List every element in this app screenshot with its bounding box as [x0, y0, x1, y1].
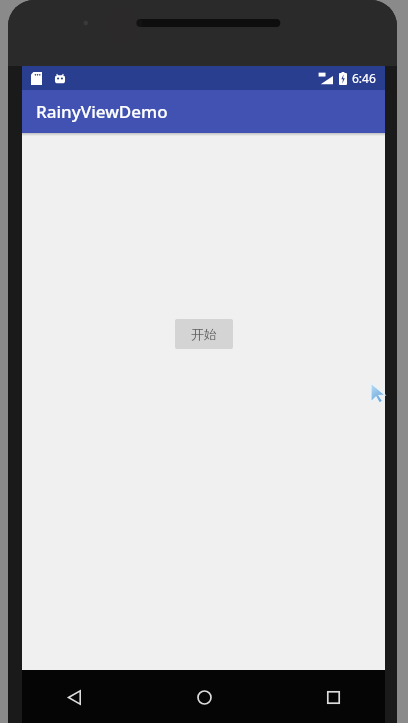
- button[interactable]: 开始: [175, 319, 233, 349]
- button[interactable]: Home: [180, 673, 228, 721]
- button[interactable]: Back: [50, 673, 98, 721]
- button[interactable]: Recent apps: [309, 673, 357, 721]
- staticText: 6:46: [352, 70, 376, 86]
- staticText: 开始: [191, 326, 217, 342]
- staticText: RainyViewDemo: [36, 100, 168, 123]
